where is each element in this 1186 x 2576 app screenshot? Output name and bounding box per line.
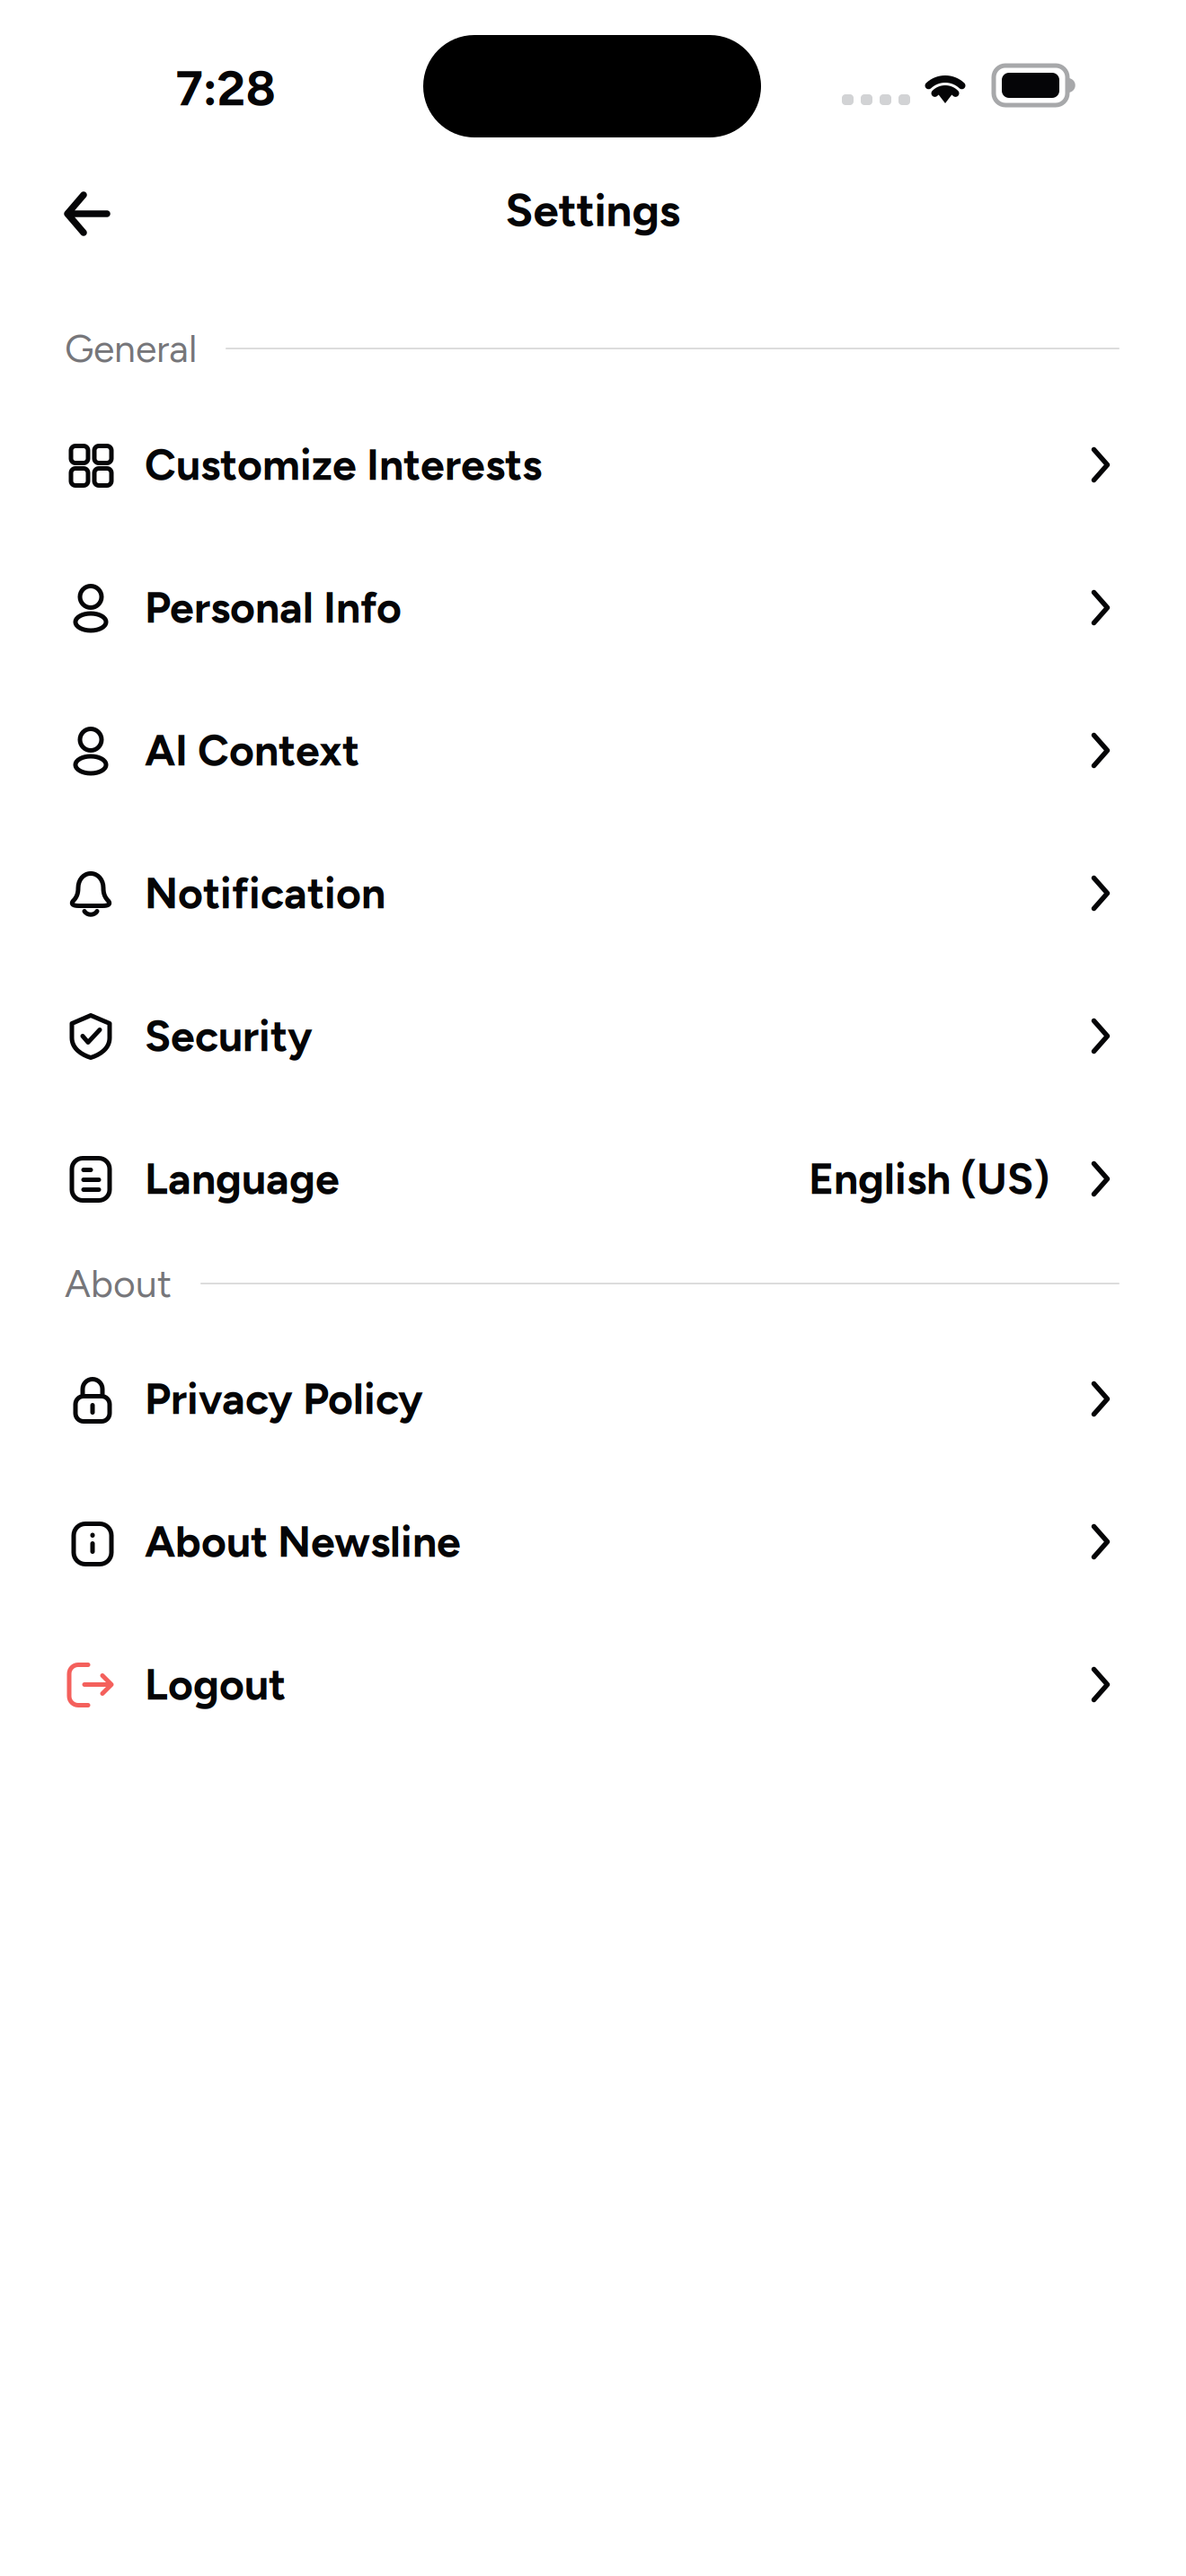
button[interactable]: About Newsline (0, 1470, 1186, 1613)
staticText: Logout (145, 1659, 286, 1710)
staticText: Personal Info (145, 582, 402, 633)
staticText: Notification (145, 867, 385, 919)
staticText: Privacy Policy (145, 1373, 423, 1425)
button[interactable]: Personal Info (0, 536, 1186, 679)
staticText: About (65, 1261, 172, 1307)
button[interactable]: Notification (0, 822, 1186, 965)
button[interactable]: Back (38, 164, 137, 263)
button[interactable]: Security (0, 965, 1186, 1107)
staticText: Settings (505, 183, 681, 237)
staticText: General (65, 326, 197, 371)
staticText: Security (145, 1010, 313, 1062)
staticText: Language (145, 1153, 340, 1205)
button[interactable]: Logout (0, 1613, 1186, 1756)
staticText: About Newsline (145, 1516, 461, 1568)
staticText: 7:28 (176, 59, 275, 117)
button[interactable]: Privacy Policy (0, 1328, 1186, 1470)
button[interactable]: AI Context (0, 679, 1186, 822)
button[interactable]: Language (0, 1107, 1186, 1250)
staticText: Customize Interests (145, 439, 542, 491)
staticText: English (US) (809, 1153, 1049, 1205)
button[interactable]: Customize Interests (0, 393, 1186, 536)
staticText: AI Context (145, 725, 359, 776)
